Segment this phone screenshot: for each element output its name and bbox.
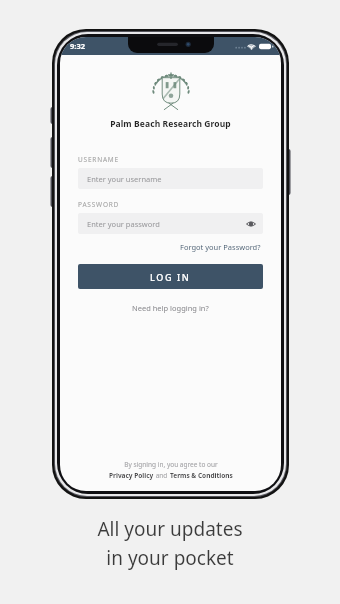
staticText: Enter your password	[87, 219, 160, 229]
button[interactable]: Privacy Policy	[109, 471, 154, 480]
staticText: Palm Beach Research Group	[110, 118, 231, 130]
button[interactable]: Enter your password	[78, 213, 263, 234]
staticText: All your updates	[97, 516, 243, 542]
staticText: Privacy Policy	[109, 471, 154, 480]
staticText: Need help logging in?	[132, 303, 209, 313]
button[interactable]: LOG IN	[78, 264, 263, 289]
staticText: 9:32	[70, 41, 85, 51]
staticText: Terms & Conditions	[170, 471, 233, 480]
staticText: By signing in, you agree to our	[124, 460, 218, 469]
button[interactable]: Need help logging in?	[129, 302, 212, 314]
button[interactable]: Show password	[244, 217, 257, 230]
staticText: LOG IN	[150, 271, 191, 283]
staticText: PASSWORD	[78, 200, 120, 209]
button[interactable]: Terms & Conditions	[170, 471, 233, 480]
staticText: Enter your username	[87, 174, 162, 184]
staticText: Forgot your Password?	[180, 242, 261, 252]
button[interactable]: Enter your username	[78, 168, 263, 189]
button[interactable]: Forgot your Password?	[178, 241, 263, 253]
staticText: and	[154, 471, 170, 480]
staticText: USERNAME	[78, 155, 119, 164]
staticText: in your pocket	[106, 545, 234, 571]
